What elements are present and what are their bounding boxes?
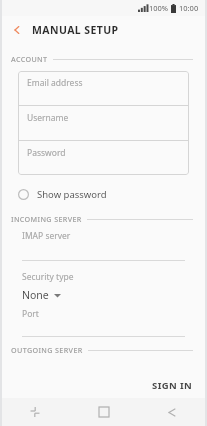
staticText: INCOMING SERVER <box>11 214 82 224</box>
staticText: Password <box>27 147 66 159</box>
staticText: Show password <box>37 188 107 201</box>
button[interactable]: IMAP server <box>22 230 185 261</box>
staticText: None <box>22 288 49 302</box>
button[interactable]: Email address <box>18 71 189 105</box>
staticText: Port <box>22 308 39 320</box>
staticText: OUTGOING SERVER <box>11 345 83 355</box>
staticText: SIGN IN <box>152 379 193 392</box>
staticText: Email address <box>27 77 83 89</box>
button[interactable]: Security type <box>22 271 185 302</box>
staticText: IMAP server <box>22 230 71 242</box>
button[interactable]: Show password <box>0 184 207 204</box>
button[interactable]: Port <box>22 308 185 337</box>
button[interactable]: Back <box>138 398 207 426</box>
staticText: 10:00 <box>179 3 199 13</box>
button[interactable]: Back <box>6 19 28 41</box>
button[interactable]: Username <box>18 106 189 140</box>
button[interactable]: Recents <box>0 398 69 426</box>
staticText: Username <box>27 112 69 124</box>
staticText: 100% <box>149 3 169 13</box>
staticText: MANUAL SETUP <box>32 23 119 37</box>
staticText: Security type <box>22 271 74 283</box>
button[interactable]: Password <box>18 141 189 175</box>
button[interactable]: Home <box>69 398 138 426</box>
staticText: ACCOUNT <box>11 54 48 64</box>
button[interactable]: SIGN IN <box>138 375 207 396</box>
